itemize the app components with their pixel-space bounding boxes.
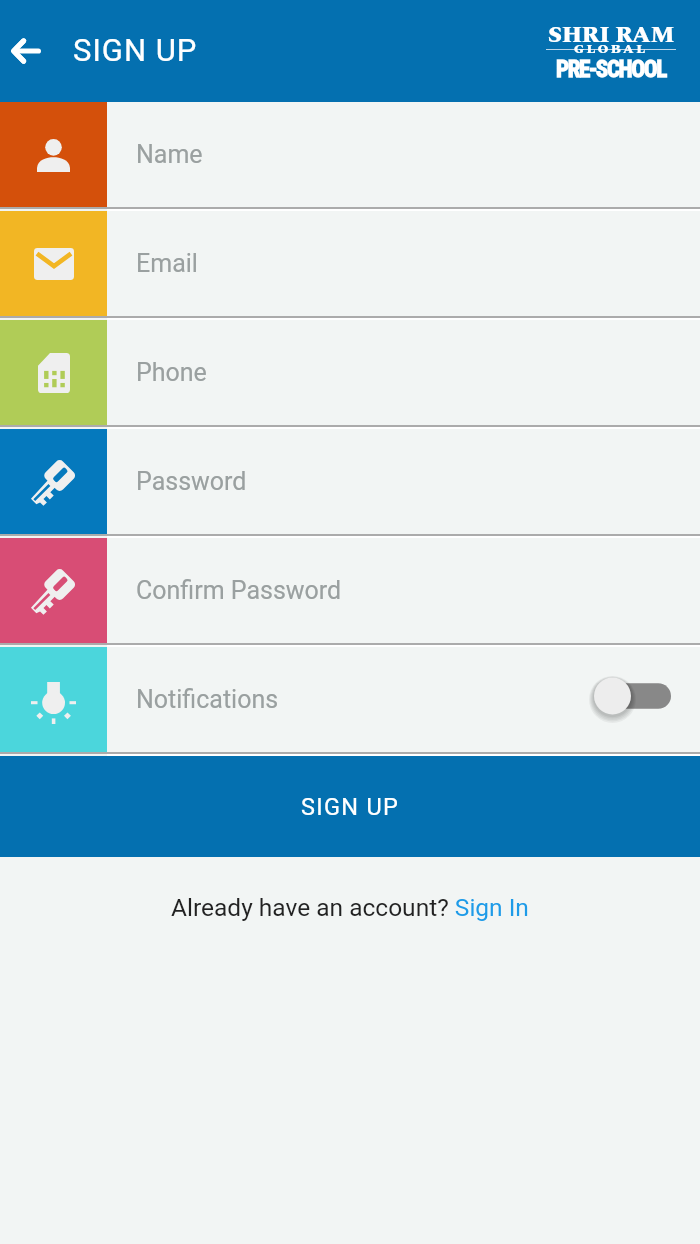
staticText: GLOBAL [574,39,648,60]
staticText: SHRI RAM [548,17,675,53]
button[interactable]: Notifications toggle [594,673,671,719]
staticText: SIGN UP [73,32,198,68]
staticText: Email [136,249,198,278]
staticText: SIGN UP [301,793,400,821]
staticText: Name [136,140,203,169]
button[interactable]: Confirm Password [0,538,700,647]
button[interactable]: Notifications [0,647,700,756]
staticText: PRE-SCHOOL [556,56,666,83]
button[interactable]: Password [0,429,700,538]
button[interactable]: Email [0,211,700,320]
staticText: Notifications [136,685,279,714]
button[interactable]: Back [0,0,50,102]
staticText: Password [136,467,247,496]
staticText: Phone [136,358,207,387]
button[interactable]: Phone [0,320,700,429]
staticText: Confirm Password [136,576,342,605]
button[interactable]: Already have an account? Sign In [171,893,529,922]
button[interactable]: SIGN UP [0,756,700,857]
button[interactable]: Name [0,102,700,211]
